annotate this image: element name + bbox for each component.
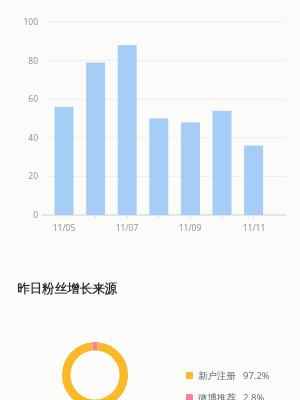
button[interactable]: 粉丝来源占比环形图: [62, 342, 128, 400]
staticText: 0: [8, 209, 38, 221]
staticText: 20: [8, 170, 38, 182]
staticText: 100: [8, 16, 38, 28]
staticText: 11/07: [107, 222, 147, 234]
staticText: 97.2%: [243, 369, 270, 382]
button[interactable]: 新户注册: [186, 369, 270, 382]
staticText: 80: [8, 55, 38, 67]
staticText: 11/05: [44, 222, 84, 234]
staticText: 11/09: [170, 222, 210, 234]
staticText: 昨日粉丝增长来源: [17, 281, 117, 297]
staticText: 60: [8, 93, 38, 105]
staticText: 微博推荐: [198, 392, 236, 400]
staticText: 40: [8, 132, 38, 144]
staticText: 11/11: [234, 222, 274, 234]
staticText: 2.8%: [243, 391, 265, 400]
staticText: 新户注册: [198, 370, 236, 382]
button[interactable]: 微博推荐: [186, 391, 265, 400]
